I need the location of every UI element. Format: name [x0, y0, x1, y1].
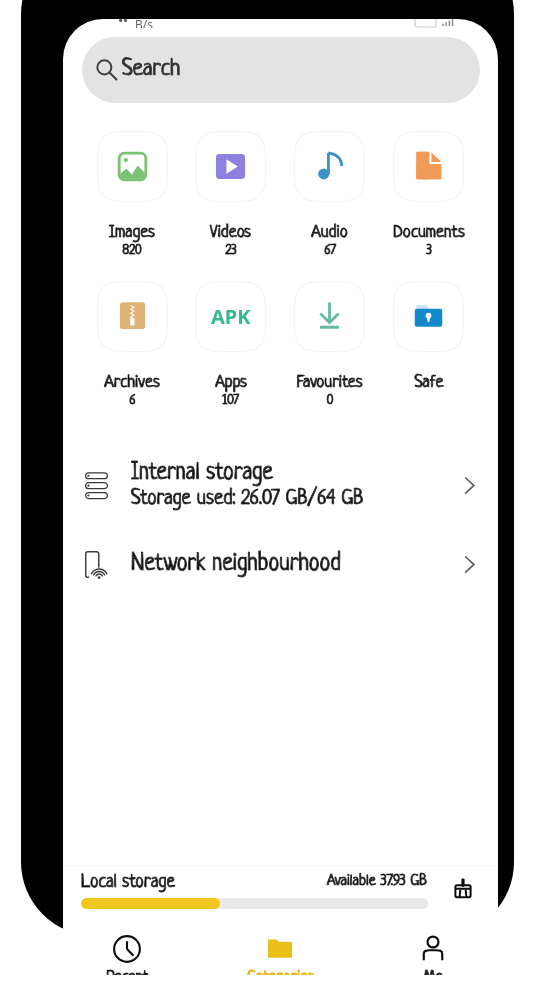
- button[interactable]: Videos: [181, 131, 280, 258]
- button[interactable]: Recent: [79, 935, 175, 975]
- staticText: Videos: [210, 223, 251, 242]
- staticText: Network neighbourhood: [131, 552, 341, 577]
- button[interactable]: Favourites: [280, 281, 379, 408]
- staticText: 0: [326, 393, 334, 408]
- staticText: Archives: [104, 373, 160, 392]
- button[interactable]: Internal storage: [63, 446, 498, 525]
- staticText: Audio: [311, 223, 348, 242]
- staticText: Archives: [104, 373, 160, 392]
- staticText: Available 37.93 GB: [327, 873, 428, 890]
- staticText: Recent: [106, 969, 149, 975]
- staticText: 107: [222, 393, 239, 408]
- staticText: APK: [211, 303, 251, 330]
- staticText: Local storage: [81, 872, 175, 892]
- staticText: 0: [326, 393, 334, 408]
- staticText: 3: [426, 243, 432, 258]
- staticText: Categories: [247, 969, 314, 975]
- staticText: Search: [122, 57, 181, 82]
- staticText: 3: [426, 243, 432, 258]
- staticText: Favourites: [296, 373, 363, 392]
- staticText: 6: [129, 393, 136, 408]
- staticText: Videos: [210, 223, 251, 242]
- staticText: Me: [423, 969, 443, 975]
- staticText: Safe: [414, 373, 444, 392]
- staticText: Me: [423, 969, 443, 975]
- button[interactable]: Documents: [379, 131, 478, 258]
- staticText: Images: [109, 223, 155, 242]
- staticText: 23: [225, 243, 237, 258]
- button[interactable]: Categories: [232, 935, 328, 975]
- staticText: Internal storage: [131, 461, 273, 486]
- staticText: Available 37.93 GB: [327, 873, 428, 890]
- staticText: Favourites: [296, 373, 363, 392]
- staticText: Apps: [215, 373, 247, 392]
- button[interactable]: APK: [181, 281, 280, 408]
- button[interactable]: Archives: [83, 281, 181, 408]
- staticText: Safe: [414, 373, 444, 392]
- staticText: Documents: [393, 223, 465, 242]
- staticText: 820: [122, 243, 142, 258]
- staticText: 67: [324, 243, 336, 258]
- staticText: 6: [129, 393, 136, 408]
- staticText: Apps: [215, 373, 247, 392]
- staticText: Storage used: 26.07 GB/64 GB: [131, 488, 364, 510]
- button[interactable]: Audio: [280, 131, 379, 258]
- staticText: Search: [122, 57, 181, 82]
- button[interactable]: Safe: [379, 281, 478, 392]
- staticText: Recent: [106, 969, 149, 975]
- staticText: Storage used: 26.07 GB/64 GB: [131, 488, 364, 510]
- staticText: Internal storage: [131, 461, 273, 486]
- staticText: 67: [324, 243, 336, 258]
- staticText: Images: [109, 223, 155, 242]
- staticText: Network neighbourhood: [131, 552, 341, 577]
- staticText: Documents: [393, 223, 465, 242]
- button[interactable]: Search: [82, 37, 480, 103]
- staticText: Local storage: [81, 872, 175, 892]
- staticText: Categories: [247, 969, 314, 975]
- staticText: 820: [122, 243, 142, 258]
- staticText: Audio: [311, 223, 348, 242]
- staticText: 107: [222, 393, 239, 408]
- button[interactable]: Clean up storage: [448, 873, 478, 903]
- button[interactable]: Me: [385, 935, 481, 975]
- button[interactable]: Images: [83, 131, 181, 258]
- button[interactable]: Network neighbourhood: [63, 525, 498, 604]
- staticText: B/s: [135, 19, 154, 28]
- staticText: 23: [225, 243, 237, 258]
